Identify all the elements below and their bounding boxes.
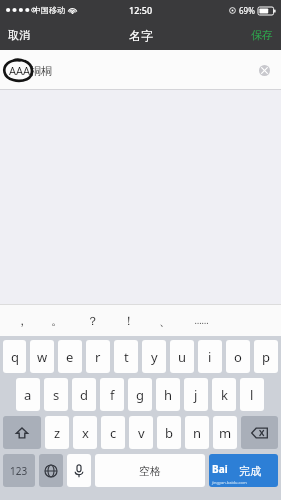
button[interactable]: f <box>100 378 124 411</box>
button[interactable]: h <box>156 378 180 411</box>
staticText: z <box>54 424 61 442</box>
button[interactable]: z <box>45 416 69 449</box>
button[interactable]: 清除 <box>255 61 273 79</box>
staticText: AAA桐桐 <box>9 63 53 78</box>
button[interactable]: j <box>184 378 208 411</box>
staticText: …… <box>194 314 209 326</box>
button[interactable]: q <box>3 340 26 373</box>
button[interactable]: c <box>101 416 125 449</box>
staticText: 完成 <box>239 464 261 478</box>
staticText: v <box>138 424 145 442</box>
staticText: 。 <box>51 313 63 328</box>
staticText: 、 <box>159 313 171 328</box>
staticText: 空格 <box>139 464 161 478</box>
button[interactable]: ？ <box>75 304 111 336</box>
button[interactable]: v <box>129 416 153 449</box>
staticText: a <box>24 386 32 404</box>
staticText: r <box>95 348 101 366</box>
button[interactable]: 123 <box>3 454 35 487</box>
staticText: k <box>221 386 228 404</box>
staticText: y <box>151 348 158 366</box>
button[interactable]: 空格 <box>95 454 205 487</box>
staticText: f <box>110 386 115 404</box>
button[interactable]: ， <box>4 304 39 336</box>
button[interactable]: 。 <box>39 304 75 336</box>
button[interactable]: o <box>226 340 250 373</box>
staticText: g <box>136 386 144 404</box>
button[interactable]: a <box>16 378 40 411</box>
button[interactable]: s <box>44 378 68 411</box>
staticText: ？ <box>87 313 99 328</box>
staticText: x <box>82 424 89 442</box>
button[interactable]: 切换键盘 <box>39 454 63 487</box>
button[interactable]: m <box>213 416 237 449</box>
button[interactable]: r <box>86 340 110 373</box>
staticText: 69% <box>239 5 255 16</box>
staticText: o <box>234 348 242 366</box>
button[interactable]: i <box>198 340 222 373</box>
button[interactable]: 、 <box>147 304 183 336</box>
button[interactable]: 语音输入 <box>67 454 91 487</box>
staticText: ， <box>16 313 28 328</box>
staticText: b <box>165 424 173 442</box>
button[interactable]: l <box>240 378 264 411</box>
staticText: ！ <box>123 313 135 328</box>
button[interactable]: Shift <box>3 416 41 449</box>
button[interactable]: ！ <box>111 304 147 336</box>
button[interactable]: p <box>254 340 278 373</box>
button[interactable]: u <box>170 340 194 373</box>
button[interactable]: x <box>73 416 97 449</box>
staticText: w <box>37 348 48 366</box>
button[interactable]: 完成 <box>209 454 278 487</box>
button[interactable]: 取消 <box>0 23 38 47</box>
staticText: 中国移动 <box>33 5 65 15</box>
button[interactable]: AAA桐桐 <box>0 50 281 90</box>
staticText: q <box>11 348 19 366</box>
staticText: s <box>53 386 60 404</box>
button[interactable]: e <box>58 340 82 373</box>
button[interactable]: w <box>30 340 54 373</box>
staticText: n <box>193 424 202 442</box>
staticText: h <box>164 386 173 404</box>
staticText: j <box>194 386 198 404</box>
staticText: c <box>110 424 117 442</box>
staticText: 取消 <box>8 28 30 42</box>
staticText: 12:50 <box>129 4 153 16</box>
staticText: p <box>262 348 270 366</box>
button[interactable]: y <box>142 340 166 373</box>
button[interactable]: g <box>128 378 152 411</box>
button[interactable]: d <box>72 378 96 411</box>
staticText: jingyan.baidu.com <box>212 480 247 485</box>
staticText: 名字 <box>129 28 153 43</box>
staticText: l <box>250 386 254 404</box>
button[interactable]: b <box>157 416 181 449</box>
button[interactable]: t <box>114 340 138 373</box>
staticText: Bai <box>212 462 228 476</box>
staticText: e <box>66 348 74 366</box>
button[interactable]: 退格 <box>241 416 278 449</box>
staticText: d <box>80 386 88 404</box>
staticText: t <box>124 348 129 366</box>
staticText: i <box>208 348 212 366</box>
staticText: m <box>219 424 232 442</box>
button[interactable]: …… <box>183 304 219 336</box>
button[interactable]: 保存 <box>243 23 281 47</box>
button[interactable]: k <box>212 378 236 411</box>
staticText: 保存 <box>251 28 273 42</box>
button[interactable]: n <box>185 416 209 449</box>
staticText: u <box>178 348 187 366</box>
staticText: 123 <box>10 464 28 478</box>
